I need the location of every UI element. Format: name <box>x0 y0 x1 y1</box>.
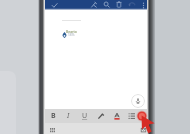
staticText: B <box>51 111 56 121</box>
button[interactable]: Highlighter <box>94 109 107 123</box>
button[interactable]: Search <box>101 0 113 10</box>
button[interactable]: Email <box>137 126 149 134</box>
button[interactable]: Done <box>47 0 61 10</box>
staticText: Bearto <box>66 29 77 34</box>
button[interactable]: Underline <box>78 109 91 123</box>
button[interactable]: Text colour <box>110 109 123 123</box>
button[interactable]: Bold <box>47 109 60 123</box>
button[interactable]: Delete <box>113 0 125 10</box>
staticText: U <box>82 111 88 121</box>
staticText: 18% <box>68 33 75 37</box>
staticText: I <box>67 111 70 121</box>
button[interactable]: Format painter <box>88 0 100 10</box>
button[interactable]: Voice input <box>131 94 145 108</box>
button[interactable]: Undo <box>126 0 138 10</box>
button[interactable]: Italic <box>62 109 75 123</box>
button[interactable]: List <box>125 109 138 123</box>
button[interactable]: Keyboard <box>46 126 58 134</box>
button[interactable]: More options <box>138 0 148 10</box>
